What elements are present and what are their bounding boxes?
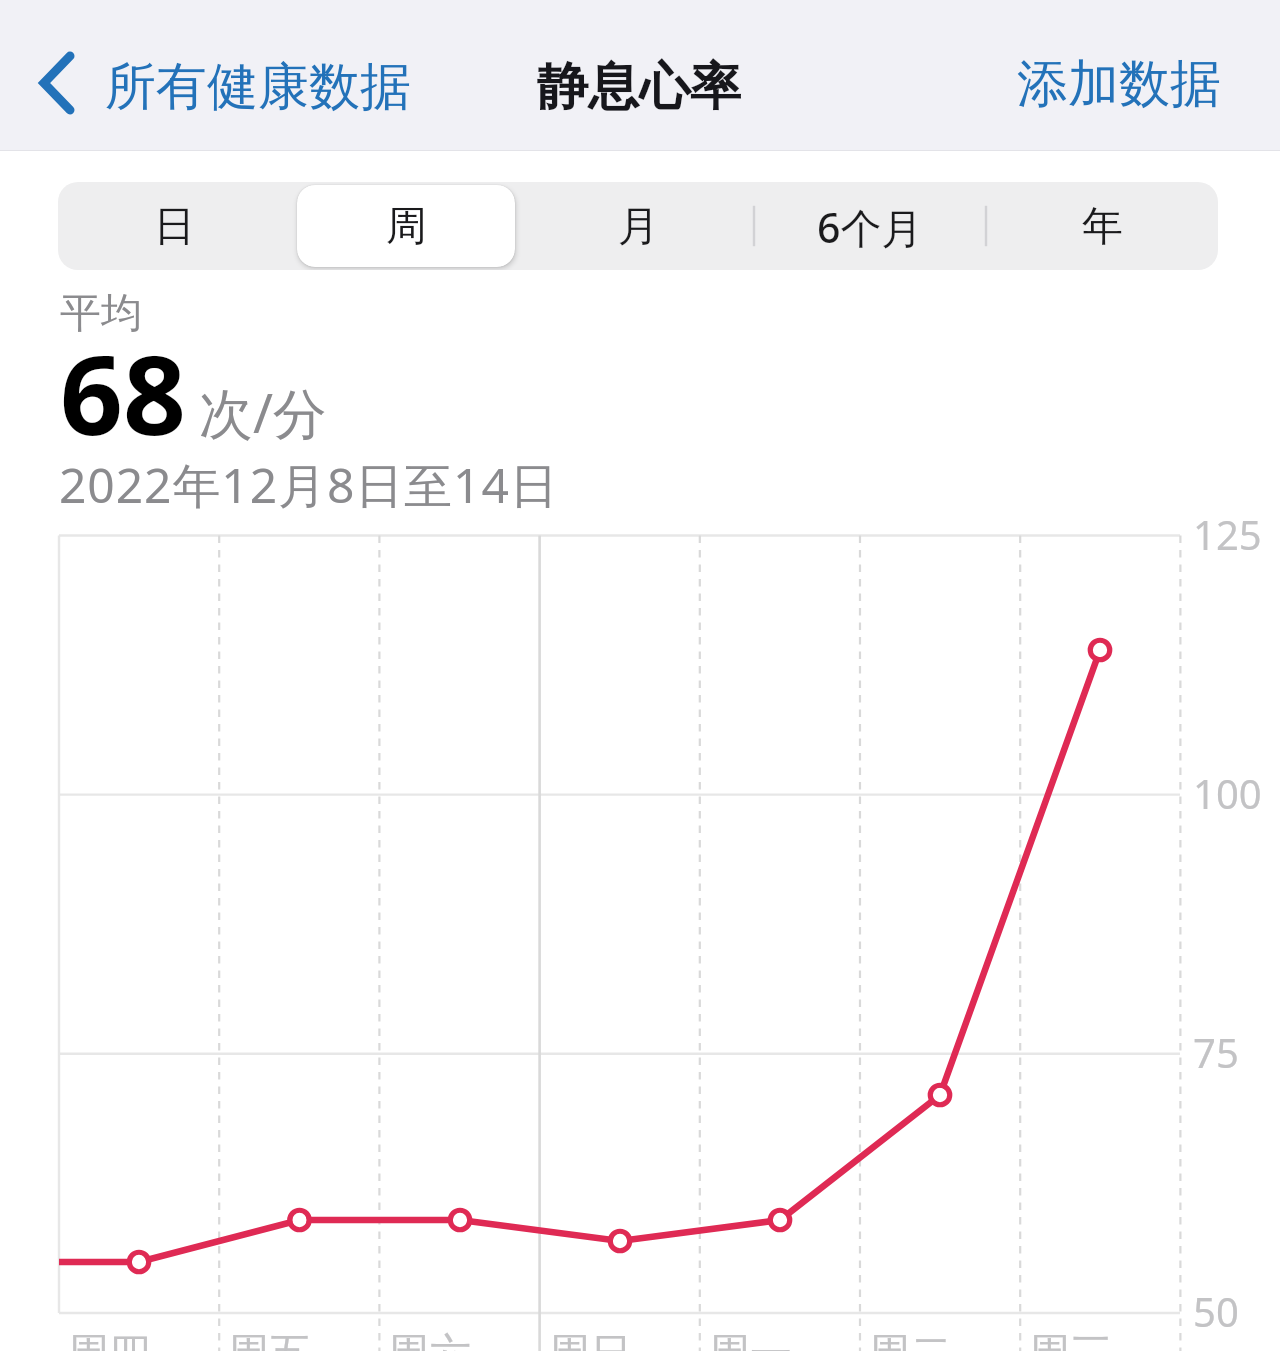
staticText: 125 — [1193, 507, 1262, 561]
button[interactable]: 添加数据 — [1001, 38, 1237, 116]
staticText: 周一 — [708, 1328, 792, 1351]
staticText: 静息心率 — [537, 55, 741, 119]
staticText: 次/分 — [199, 375, 328, 449]
button[interactable]: 月 — [522, 182, 754, 270]
staticText: 日 — [154, 201, 195, 253]
staticText: 添加数据 — [1017, 52, 1221, 116]
staticText: 100 — [1193, 766, 1262, 820]
staticText: 2022年12月8日至14日 — [59, 452, 559, 518]
staticText: 周日 — [548, 1328, 632, 1351]
staticText: 6个月 — [817, 199, 923, 255]
staticText: 月 — [618, 201, 659, 253]
button[interactable]: 周 — [290, 182, 522, 270]
button[interactable]: 年 — [986, 182, 1218, 270]
staticText: 周六 — [387, 1328, 471, 1351]
button[interactable]: 日 — [58, 182, 290, 270]
button[interactable]: 6个月 — [754, 182, 986, 270]
staticText: 50 — [1193, 1284, 1239, 1338]
other: Back — [24, 44, 80, 122]
button[interactable]: Back — [24, 44, 386, 122]
staticText: 周四 — [67, 1328, 151, 1351]
staticText: 周三 — [1028, 1328, 1112, 1351]
staticText: 平均 — [60, 288, 142, 340]
staticText: 年 — [1082, 201, 1123, 253]
staticText: 周 — [386, 201, 427, 253]
staticText: 所有健康数据 — [105, 55, 411, 119]
staticText: 75 — [1193, 1025, 1239, 1079]
staticText: 周二 — [868, 1328, 952, 1351]
staticText: 周五 — [227, 1328, 311, 1351]
staticText: 68 — [60, 317, 186, 467]
